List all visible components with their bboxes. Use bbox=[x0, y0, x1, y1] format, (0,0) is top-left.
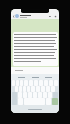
button[interactable]: Call bbox=[53, 14, 57, 18]
button[interactable]: Back bbox=[12, 13, 15, 19]
button[interactable]: Message bbox=[11, 67, 59, 74]
button[interactable] bbox=[13, 32, 58, 66]
button[interactable] bbox=[52, 98, 58, 105]
button[interactable]: Video call bbox=[48, 14, 52, 18]
